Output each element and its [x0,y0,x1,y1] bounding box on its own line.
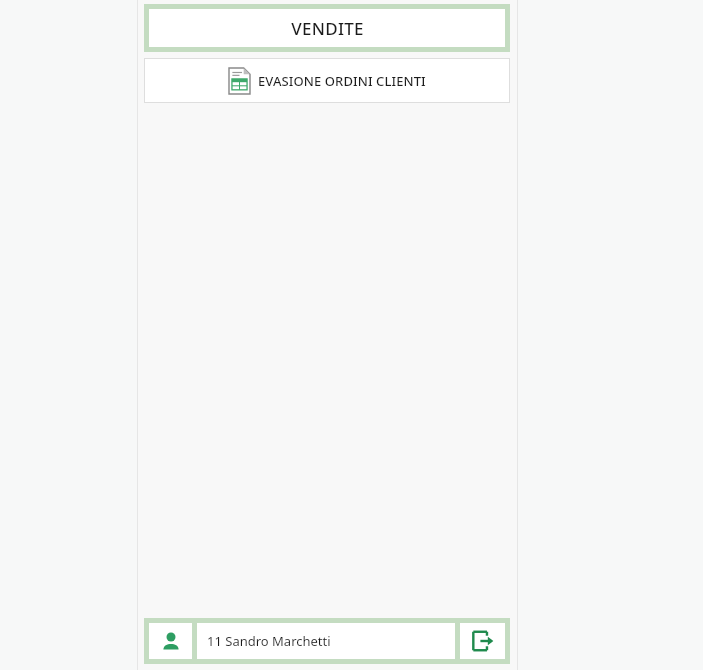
staticText: 11 Sandro Marchetti [207,632,331,650]
button[interactable]: EVASIONE ORDINI CLIENTI [144,58,510,103]
button[interactable]: Logout [460,623,505,659]
staticText: VENDITE [291,17,364,40]
staticText: EVASIONE ORDINI CLIENTI [258,72,426,90]
button[interactable]: 11 Sandro Marchetti [197,623,455,659]
button[interactable]: VENDITE [144,4,510,52]
button[interactable]: User profile [149,623,192,659]
